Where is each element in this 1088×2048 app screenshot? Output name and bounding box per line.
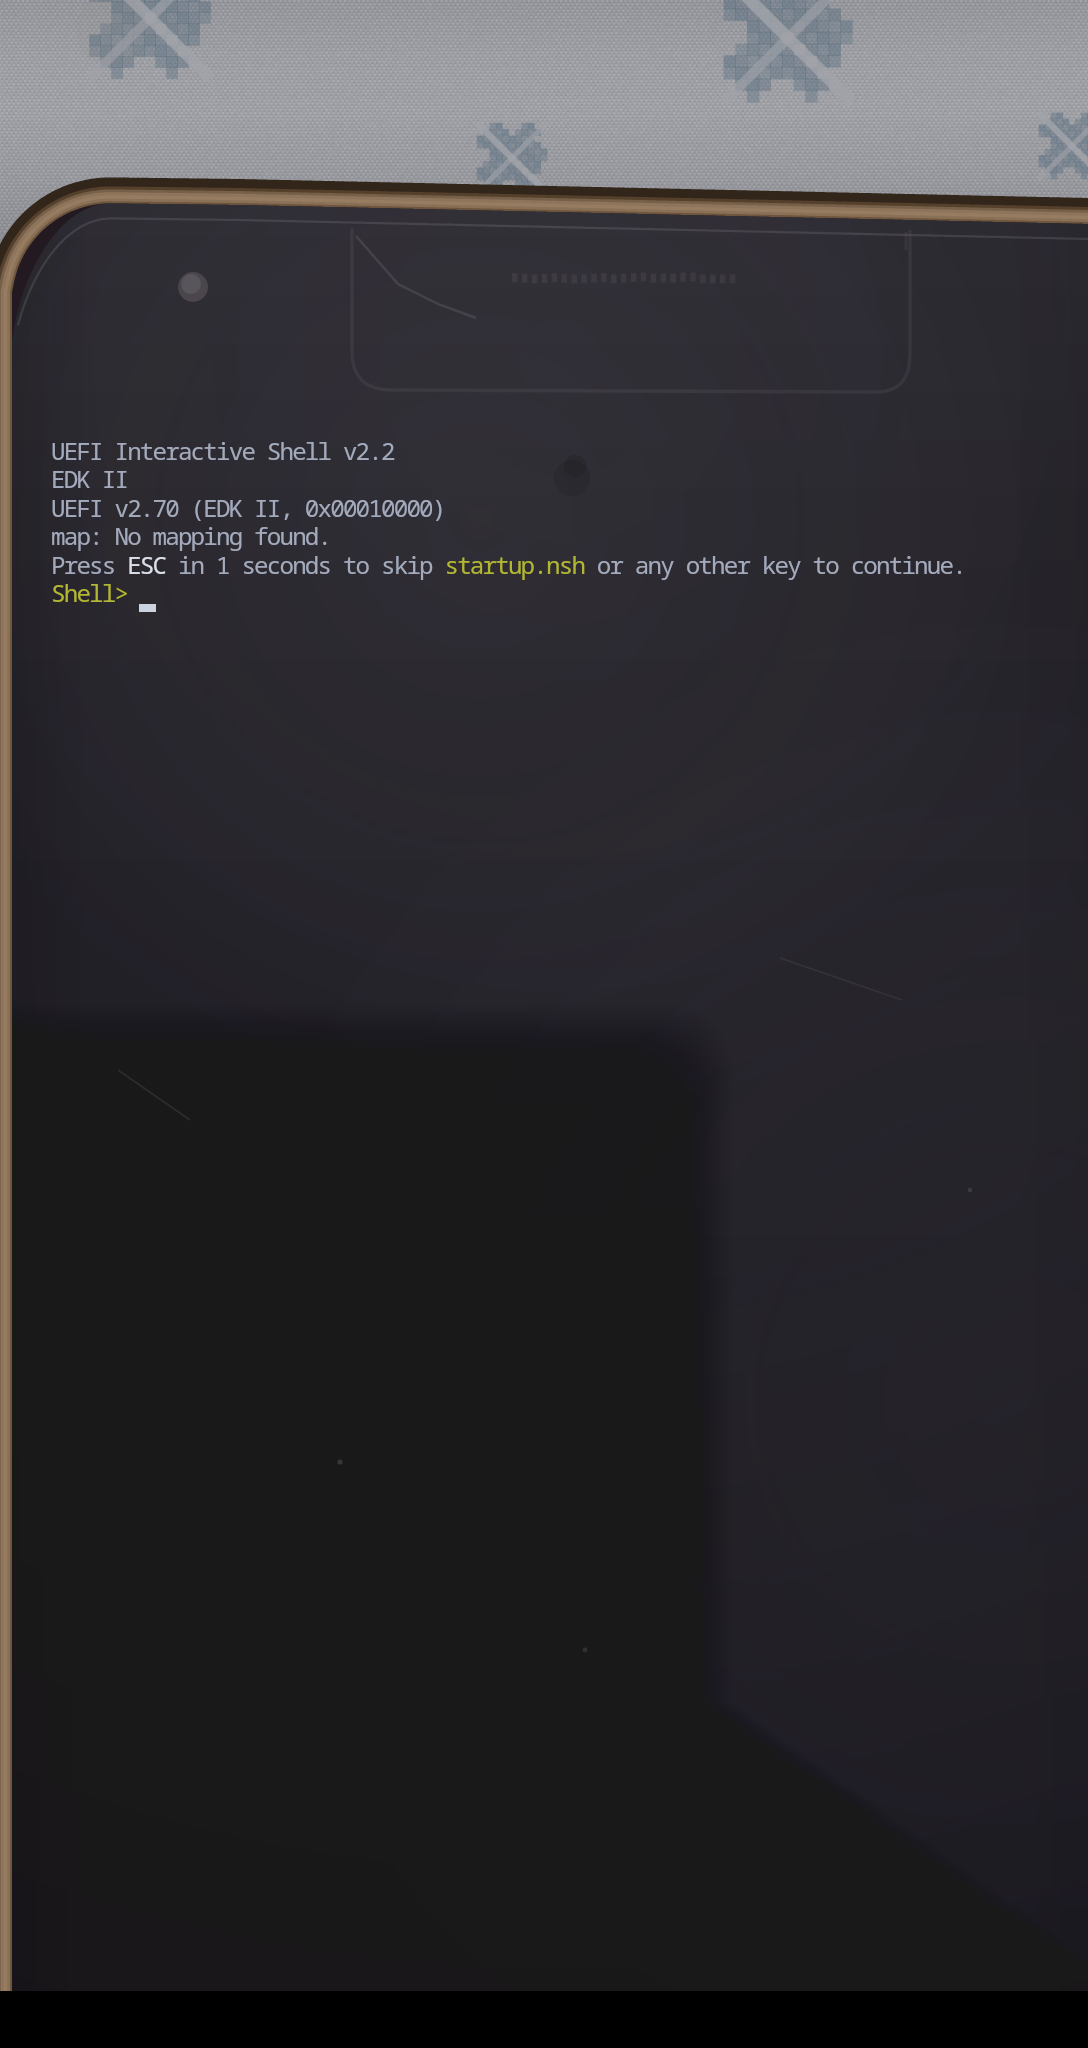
staticText: EDK II: [51, 462, 128, 495]
other: UEFI Interactive Shell boot screen: [0, 0, 1088, 2048]
staticText: map: No mapping found.: [51, 519, 331, 552]
staticText: Shell>: [51, 576, 128, 609]
staticText: UEFI Interactive Shell v2.2: [51, 434, 394, 467]
staticText: Press ESC in 1 seconds to skip startup.n…: [51, 548, 965, 581]
staticText: UEFI v2.70 (EDK II, 0x00010000): [51, 491, 445, 524]
